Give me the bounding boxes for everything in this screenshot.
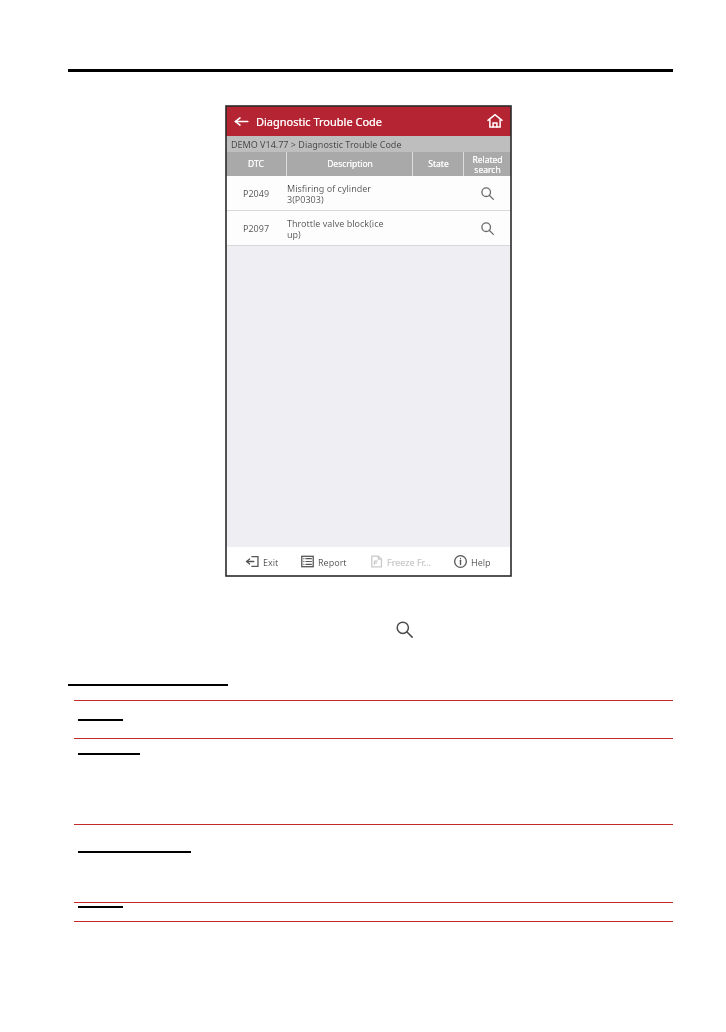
staticText: Misfiring of cylinder 3(P0303) (287, 182, 372, 205)
staticText: P2097 (243, 222, 270, 234)
staticText: DEMO V14.77 > Diagnostic Trouble Code (231, 138, 402, 150)
staticText: DTC (248, 158, 264, 170)
button[interactable]: Exit (243, 555, 282, 568)
staticText: P2049 (243, 187, 270, 199)
staticText: Related search (472, 154, 503, 175)
button[interactable]: Home (479, 106, 511, 136)
staticText: Throttle valve block(ice up) (287, 217, 384, 240)
button[interactable]: Back (226, 106, 256, 136)
button[interactable]: Report (298, 555, 350, 568)
button[interactable]: P2097 (226, 211, 511, 245)
staticText: Diagnostic Trouble Code (256, 114, 383, 129)
staticText: Report (318, 556, 347, 568)
button[interactable]: Freeze Fr... (367, 555, 435, 568)
staticText: Freeze Fr... (387, 556, 432, 568)
button[interactable]: Related search (463, 176, 511, 210)
button[interactable]: Help (451, 555, 494, 568)
staticText: Exit (263, 556, 279, 568)
staticText: Help (471, 556, 491, 568)
staticText: State (428, 158, 449, 170)
staticText: Description (327, 158, 373, 170)
button[interactable]: Related search (463, 211, 511, 245)
button[interactable]: P2049 (226, 176, 511, 210)
